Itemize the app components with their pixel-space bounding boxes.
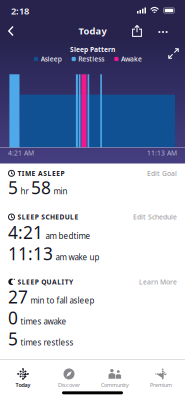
- staticText: Edit Goal: [147, 169, 177, 178]
- staticText: Restless: [78, 55, 104, 63]
- staticText: 5: [8, 327, 18, 350]
- staticText: Sleep Pattern: [70, 45, 115, 54]
- staticText: am wake up: [55, 252, 99, 262]
- staticText: 0: [8, 306, 18, 329]
- button[interactable]: [165, 45, 182, 62]
- staticText: Community: [101, 381, 129, 389]
- staticText: am bedtime: [45, 231, 90, 241]
- staticText: 4:21: [8, 221, 43, 244]
- staticText: hr: [20, 186, 28, 196]
- button[interactable]: Discover: [46, 363, 92, 393]
- button[interactable]: Edit Goal: [147, 169, 177, 178]
- staticText: 2:18: [11, 5, 29, 17]
- staticText: 58: [31, 176, 51, 199]
- button[interactable]: [128, 21, 146, 41]
- staticText: 11:13: [8, 242, 53, 265]
- staticText: min: [53, 186, 67, 196]
- staticText: times restless: [20, 337, 73, 348]
- staticText: Awake: [121, 55, 142, 63]
- button[interactable]: [153, 26, 173, 38]
- button[interactable]: Today: [0, 363, 46, 393]
- staticText: Today: [78, 25, 106, 37]
- staticText: Premium: [150, 381, 172, 389]
- staticText: 27: [8, 285, 28, 308]
- staticText: Edit Schedule: [133, 213, 177, 221]
- staticText: 11:13 AM: [147, 149, 177, 157]
- staticText: Asleep: [41, 55, 62, 63]
- staticText: Discover: [58, 381, 80, 389]
- staticText: SLEEP QUALITY: [17, 277, 73, 286]
- button[interactable]: Premium: [138, 363, 184, 393]
- staticText: TIME ASLEEP: [17, 169, 64, 178]
- staticText: min to fall asleep: [30, 295, 94, 306]
- button[interactable]: Edit Schedule: [133, 213, 177, 221]
- staticText: SLEEP SCHEDULE: [17, 213, 78, 221]
- button[interactable]: Community: [92, 363, 138, 393]
- staticText: 4:21 AM: [8, 149, 34, 157]
- button[interactable]: Learn More: [139, 277, 177, 286]
- button[interactable]: [2, 20, 20, 42]
- staticText: Learn More: [139, 277, 177, 286]
- staticText: 5: [8, 176, 18, 199]
- staticText: Today: [15, 381, 30, 389]
- staticText: times awake: [20, 316, 66, 327]
